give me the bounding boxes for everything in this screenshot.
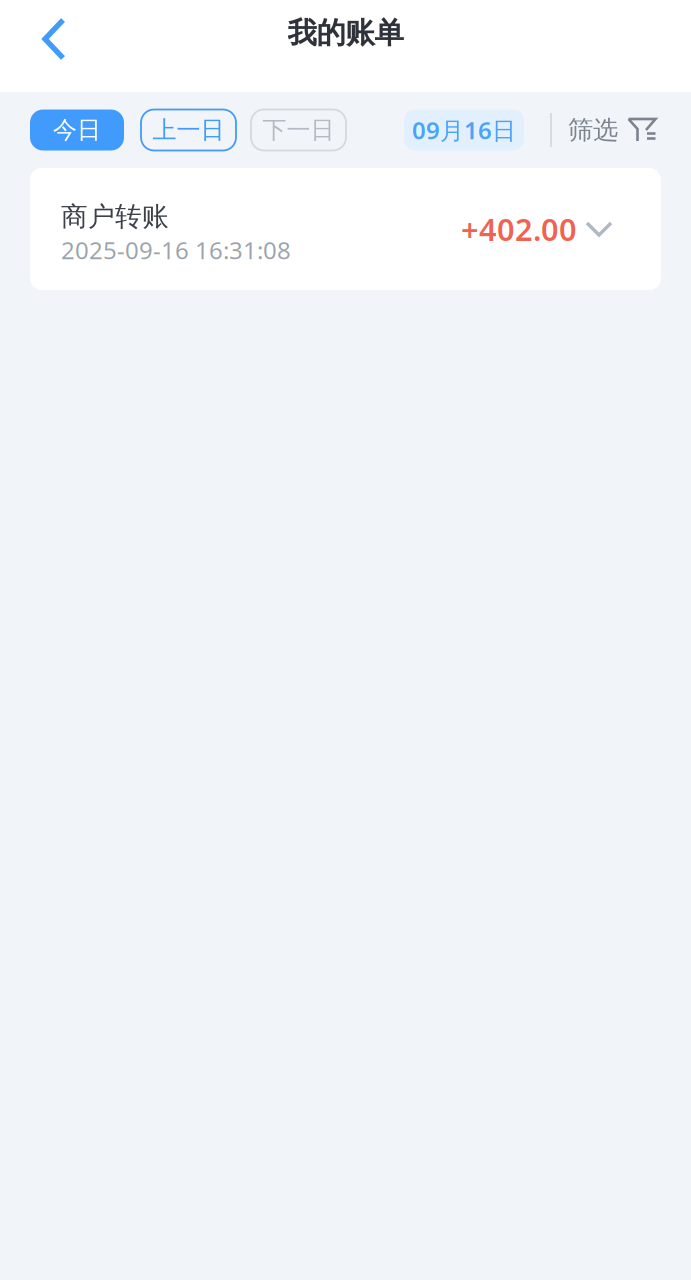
button[interactable]: 商户转账 — [30, 168, 661, 290]
staticText: 2025-09-16 16:31:08 — [61, 234, 291, 266]
button[interactable]: 筛选 — [568, 114, 657, 145]
button[interactable]: 今日 — [30, 109, 124, 150]
staticText: 上一日 — [152, 115, 224, 145]
staticText: +402.00 — [461, 209, 577, 249]
staticText: 今日 — [53, 115, 101, 145]
staticText: 下一日 — [262, 115, 334, 145]
button[interactable]: 返回 — [24, 9, 84, 69]
staticText: 商户转账 — [61, 200, 169, 233]
staticText: 09月16日 — [412, 114, 516, 146]
button[interactable]: 09月16日 — [404, 109, 524, 150]
staticText: 我的账单 — [287, 15, 403, 51]
button[interactable]: 上一日 — [141, 109, 236, 150]
button[interactable]: 下一日 — [251, 109, 346, 150]
staticText: 筛选 — [568, 114, 618, 145]
